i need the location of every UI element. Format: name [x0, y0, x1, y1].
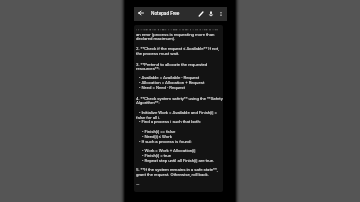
button[interactable]: Voice input [206, 9, 216, 19]
staticText: — [136, 182, 140, 187]
staticText: the process must wait. [136, 51, 180, 56]
staticText: grant the request. Otherwise, roll back. [136, 172, 209, 177]
staticText: 2. **Check if the request ≤ Available** … [136, 46, 219, 51]
staticText: • Available = Available - Request [139, 75, 200, 80]
staticText: • Finish[i] == false [142, 129, 176, 134]
staticText: Algorithm**: [136, 100, 160, 105]
button[interactable]: Edit [195, 8, 206, 19]
staticText: • If such a process is found: [139, 139, 192, 144]
staticText: • Initialize Work = Available and Finish… [139, 110, 217, 115]
staticText: • Find a process i such that both: [139, 119, 201, 124]
staticText: • Need = Need - Request [139, 85, 185, 90]
staticText: 5. **If the system remains in a safe sta… [136, 167, 218, 172]
staticText: an error (process is requesting more tha… [136, 32, 215, 37]
staticText: • Need[i] ≤ Work [142, 134, 172, 139]
staticText: resources**: [136, 66, 160, 71]
staticText: • Work = Work + Allocation[i] [142, 148, 196, 153]
button[interactable]: Back [135, 7, 147, 19]
button[interactable]: More options [216, 9, 225, 18]
staticText: • Finish[i] = true [142, 153, 171, 158]
staticText: Notepad Free [151, 11, 180, 17]
staticText: declared maximum). [136, 36, 176, 41]
button[interactable]: an error (process is requesting more tha… [134, 25, 223, 192]
staticText: 3. **Pretend to allocate the requested [136, 62, 208, 67]
staticText: 4. **Check system safety** using the **S… [136, 96, 223, 101]
staticText: false for all i. [136, 115, 161, 120]
staticText: • Allocation = Allocation + Request [139, 80, 205, 85]
staticText: • Repeat step until all Finish[i] are tr… [142, 158, 215, 163]
